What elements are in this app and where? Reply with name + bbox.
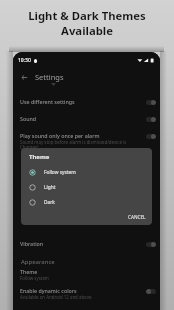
staticText: Sound — [20, 115, 37, 122]
button[interactable]: Dark — [29, 195, 147, 210]
staticText: Light — [44, 184, 56, 191]
staticText: Vibration — [20, 240, 44, 247]
staticText: Appearance — [21, 258, 55, 266]
staticText: Sound may stop before alarm is dismissed… — [20, 139, 127, 151]
staticText: Enable dynamic colors — [20, 287, 77, 294]
button[interactable]: Sound — [13, 115, 160, 122]
button[interactable]: Theme — [13, 268, 160, 281]
staticText: Theme — [29, 153, 50, 161]
staticText: Available on Android 12 and above — [20, 294, 92, 300]
staticText: Follow system — [20, 275, 49, 281]
button[interactable]: Follow system — [29, 165, 147, 180]
staticText: Follow system — [44, 169, 76, 176]
staticText: Theme — [20, 268, 38, 275]
button[interactable]: Enable dynamic colors — [13, 287, 160, 300]
staticText: Light & Dark Themes — [28, 8, 146, 23]
staticText: CANCEL — [128, 214, 146, 220]
button[interactable]: CANCEL — [127, 212, 147, 222]
staticText: Play sound only once per alarm — [20, 132, 100, 139]
staticText: Dark — [44, 199, 55, 206]
button[interactable]: Vibration — [13, 240, 160, 247]
button[interactable]: Back — [17, 70, 31, 84]
button[interactable]: Use different settings — [13, 98, 160, 105]
button[interactable]: Play sound only once per alarm — [13, 132, 160, 151]
staticText: Available — [61, 23, 113, 38]
staticText: 10:30 — [18, 57, 31, 64]
staticText: Settings — [35, 72, 64, 82]
button[interactable]: Light — [29, 180, 147, 195]
staticText: Use different settings — [20, 98, 75, 105]
